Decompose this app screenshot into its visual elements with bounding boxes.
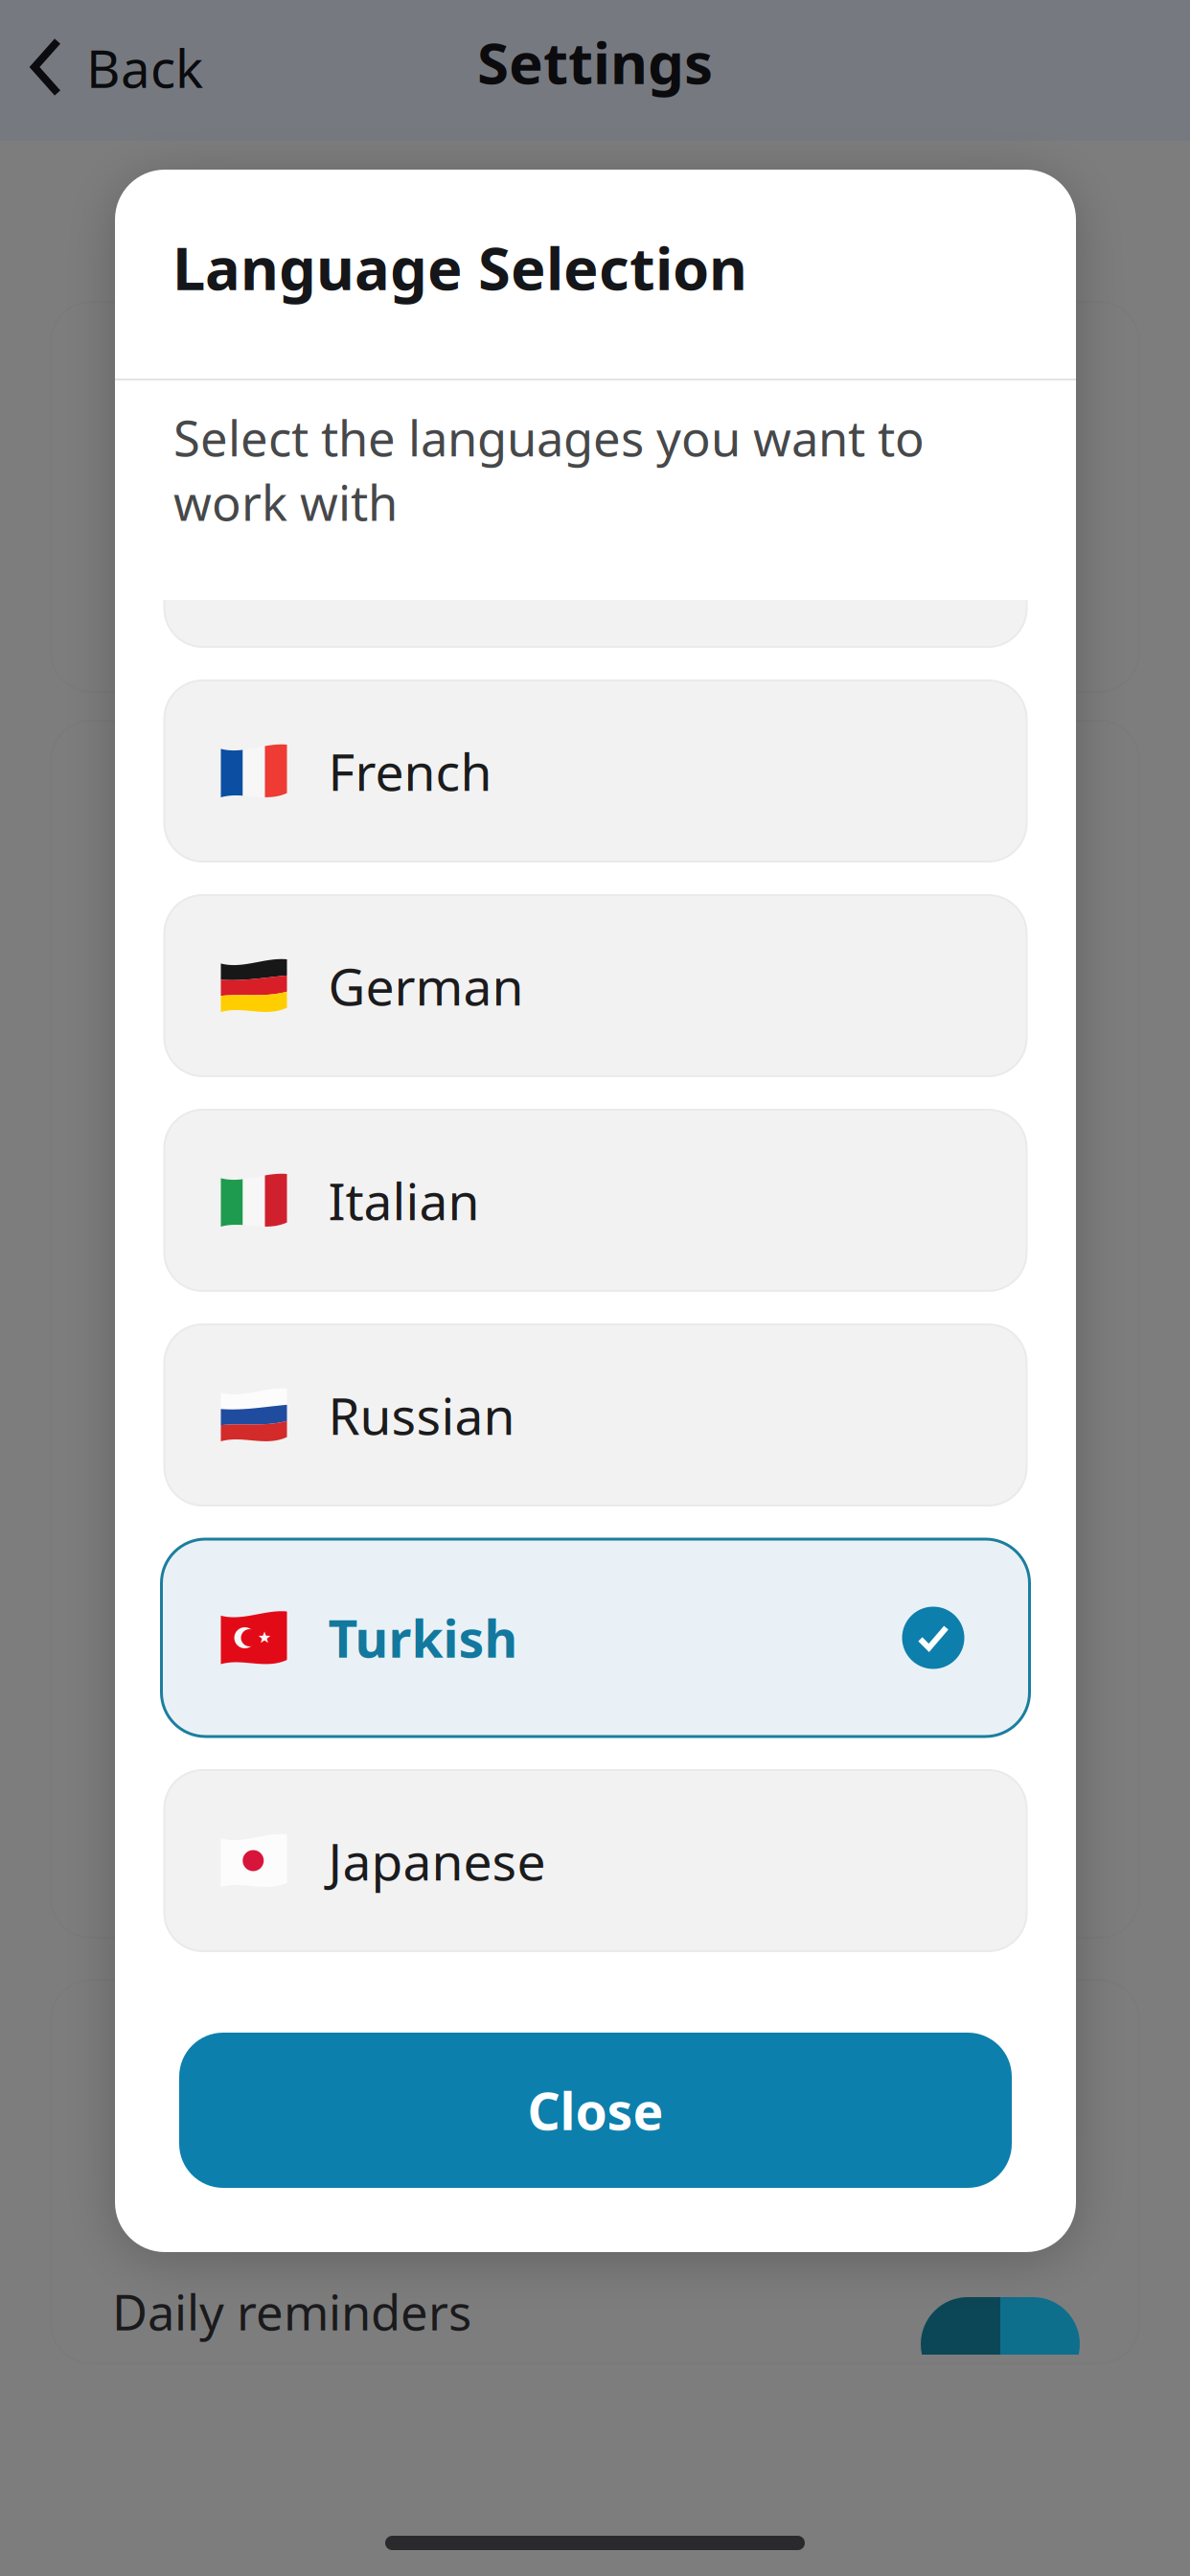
staticText: Back [86,33,203,102]
button[interactable]: Back [0,0,232,141]
staticText: Daily reminders [112,2279,471,2344]
staticText: Japanese [328,1827,546,1895]
button[interactable]: Japanese [164,1770,1027,1951]
staticText: German [328,952,524,1020]
staticText: Italian [328,1166,480,1234]
staticText: Language Selection [172,228,747,306]
staticText: Settings [477,24,713,100]
staticText: French [328,737,492,805]
button[interactable]: Russian [164,1324,1027,1506]
staticText: Russian [328,1381,515,1449]
button[interactable]: Italian [164,1110,1027,1291]
staticText: Select the languages you want to work wi… [173,405,925,534]
button[interactable]: French [164,680,1027,862]
staticText: Close [527,2076,664,2144]
button[interactable]: English [164,466,1027,647]
button[interactable]: Turkish [161,1539,1030,1736]
button[interactable]: German [164,895,1027,1076]
button[interactable]: Close [179,2033,1012,2188]
staticText: Turkish [328,1604,518,1672]
